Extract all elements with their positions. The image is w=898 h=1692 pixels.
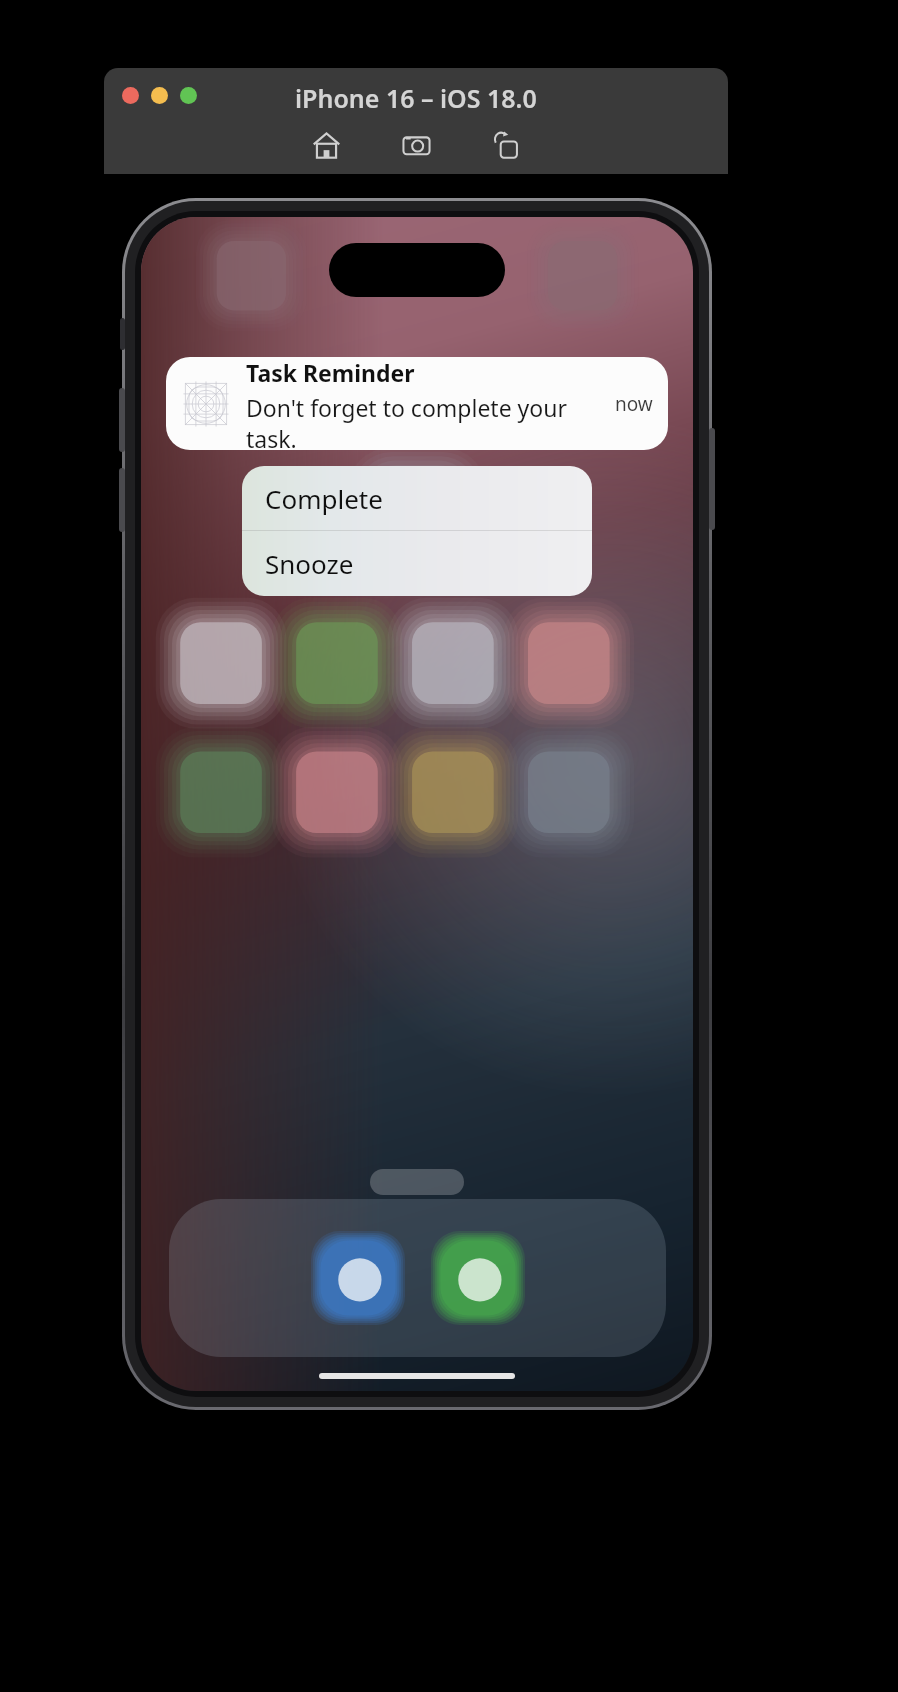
staticText: Snooze bbox=[265, 546, 354, 581]
button[interactable]: Complete bbox=[242, 466, 592, 530]
button[interactable]: Screenshot bbox=[395, 124, 437, 166]
button[interactable]: Home bbox=[305, 124, 347, 166]
staticText: iPhone 16 – iOS 18.0 bbox=[295, 81, 537, 115]
staticText: now bbox=[615, 391, 653, 417]
staticText: Task Reminder bbox=[246, 357, 415, 388]
button[interactable]: Close bbox=[122, 87, 139, 104]
button[interactable]: Snooze bbox=[242, 531, 592, 595]
button[interactable]: Rotate bbox=[485, 124, 527, 166]
staticText: Complete bbox=[265, 481, 383, 516]
button[interactable]: Minimise bbox=[151, 87, 168, 104]
button[interactable]: Zoom bbox=[180, 87, 197, 104]
button[interactable]: Task Reminder bbox=[166, 357, 668, 450]
staticText: Don't forget to complete your task. bbox=[246, 392, 615, 450]
